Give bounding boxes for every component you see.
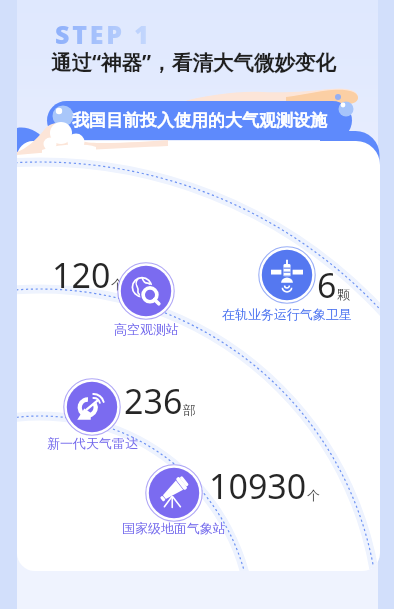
button[interactable]: 高空观测站 xyxy=(117,262,175,320)
button[interactable]: 新一代天气雷达 xyxy=(63,378,121,436)
staticText: STEP 1 xyxy=(55,17,152,51)
staticText: 国家级地面气象站 xyxy=(122,520,226,536)
button[interactable]: 我国目前投入使用的大气观测设施 xyxy=(47,101,352,140)
staticText: 个 xyxy=(111,276,124,292)
button[interactable]: 在轨业务运行气象卫星 xyxy=(258,246,316,304)
staticText: 10930 xyxy=(209,463,307,509)
staticText: 部 xyxy=(183,402,196,418)
staticText: 在轨业务运行气象卫星 xyxy=(222,306,352,322)
staticText: 颗 xyxy=(337,286,350,302)
button[interactable]: 国家级地面气象站 xyxy=(145,464,203,522)
staticText: 新一代天气雷达 xyxy=(47,435,138,451)
staticText: 高空观测站 xyxy=(114,321,179,337)
staticText: 6 xyxy=(317,262,337,308)
staticText: 通过“神器”，看清大气微妙变化 xyxy=(51,48,336,76)
staticText: 我国目前投入使用的大气观测设施 xyxy=(72,110,327,131)
staticText: 个 xyxy=(307,487,320,503)
staticText: 236 xyxy=(124,378,183,424)
staticText: 120 xyxy=(52,252,111,298)
